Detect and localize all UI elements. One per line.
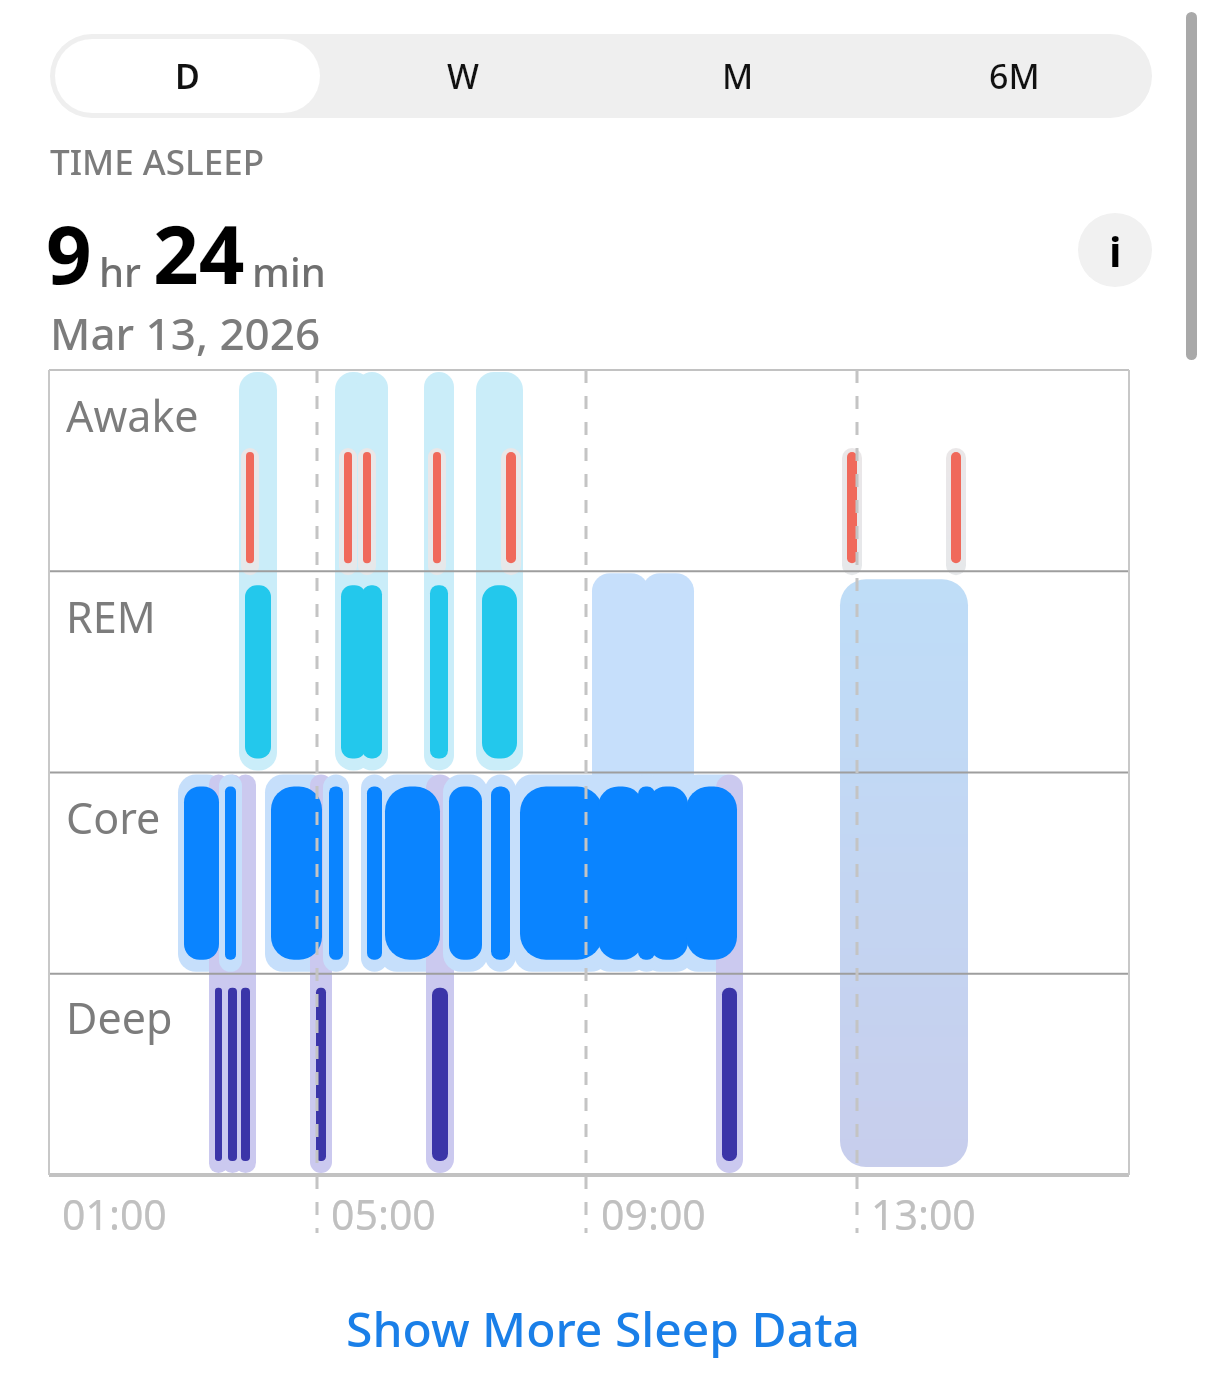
staticText: i [1109,222,1122,279]
button[interactable]: Info about time asleep [1078,213,1152,287]
staticText: 9 [46,198,92,307]
staticText: Show More Sleep Data [346,1296,860,1361]
staticText: min [252,244,326,298]
staticText: Awake [66,386,199,445]
staticText: Deep [66,988,173,1047]
button[interactable]: 6M [881,39,1147,113]
staticText: W [447,53,479,99]
button[interactable]: D [55,39,320,113]
staticText: 24 [153,198,245,307]
button[interactable]: W [330,39,595,113]
staticText: hr [99,244,141,298]
staticText: M [722,53,754,99]
staticText: D [175,53,200,99]
staticText: 6M [989,53,1040,99]
staticText: Core [66,788,161,847]
staticText: 09:00 [601,1186,706,1242]
staticText: TIME ASLEEP [50,138,264,186]
staticText: 01:00 [62,1186,167,1242]
button[interactable]: Show More Sleep Data [0,1292,1206,1364]
staticText: 13:00 [871,1186,976,1242]
staticText: REM [66,587,156,646]
staticText: Mar 13, 2026 [50,303,321,363]
button[interactable]: M [605,39,871,113]
staticText: 05:00 [331,1186,436,1242]
